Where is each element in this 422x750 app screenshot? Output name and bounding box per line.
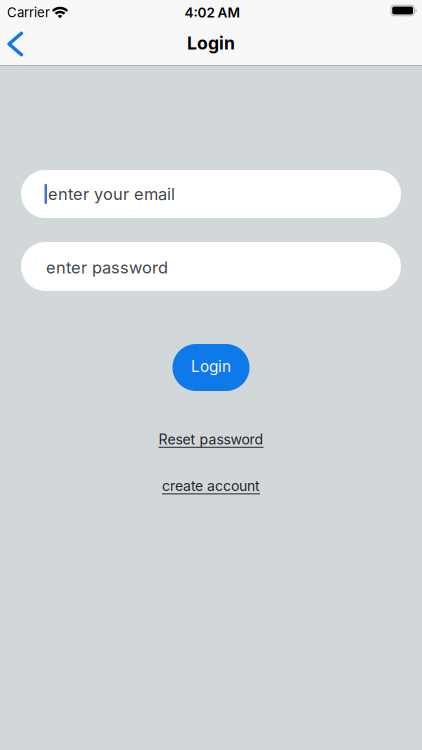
staticText: enter password bbox=[46, 258, 168, 277]
staticText: Login bbox=[187, 33, 235, 53]
staticText: Reset password bbox=[158, 431, 263, 448]
button[interactable]: enter your email bbox=[21, 170, 401, 218]
staticText: Login bbox=[191, 357, 231, 376]
staticText: 4:02 AM bbox=[184, 4, 240, 20]
staticText: create account bbox=[162, 478, 260, 494]
button[interactable]: create account bbox=[162, 478, 260, 494]
button[interactable]: Login bbox=[172, 344, 249, 391]
button[interactable]: Back bbox=[0, 26, 33, 64]
staticText: Carrier bbox=[7, 5, 50, 20]
button[interactable]: Reset password bbox=[158, 431, 263, 448]
button[interactable]: enter password bbox=[21, 242, 401, 291]
staticText: enter your email bbox=[48, 184, 175, 204]
